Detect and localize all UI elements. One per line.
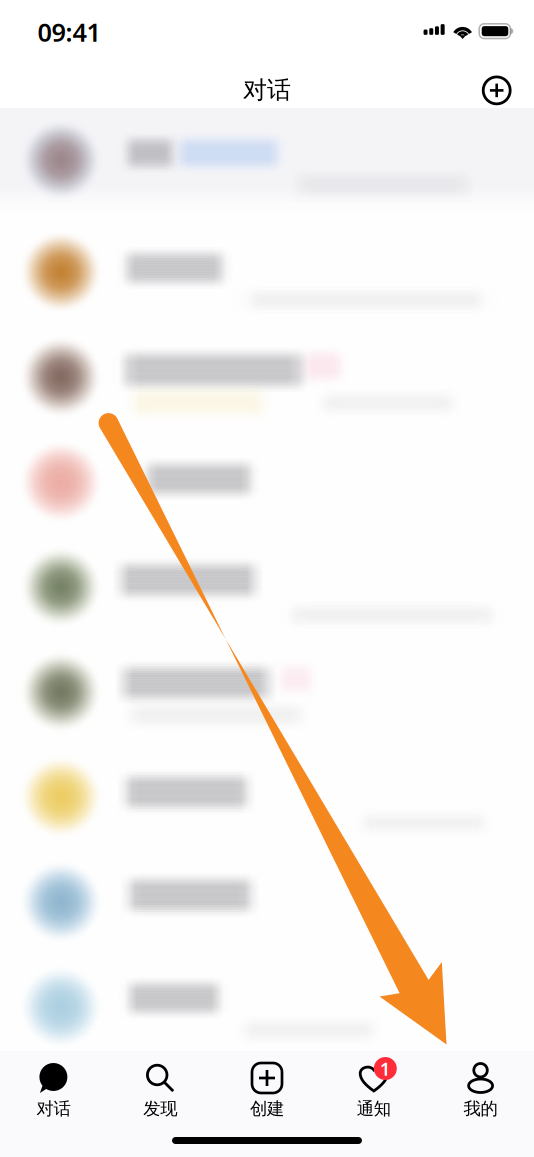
staticText: 通知 xyxy=(357,1098,391,1119)
staticText: 09:41 xyxy=(37,15,100,49)
staticText: 1 xyxy=(380,1056,391,1081)
staticText: 对话 xyxy=(36,1098,70,1119)
button[interactable]: 1 xyxy=(320,1051,427,1125)
button[interactable]: 对话 xyxy=(0,1051,107,1125)
staticText: 对话 xyxy=(243,75,291,105)
button[interactable]: 创建 xyxy=(214,1051,320,1125)
button[interactable]: 发现 xyxy=(107,1051,214,1125)
button[interactable]: 新建对话 xyxy=(474,67,520,113)
staticText: 创建 xyxy=(250,1098,284,1119)
button[interactable]: 我的 xyxy=(427,1051,534,1125)
staticText: 我的 xyxy=(464,1098,498,1119)
staticText: 发现 xyxy=(143,1098,177,1119)
